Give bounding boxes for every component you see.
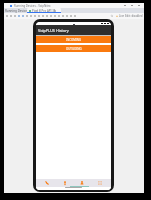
button[interactable]: tool5 [25, 13, 29, 19]
button[interactable]: tool2 [13, 13, 17, 19]
button[interactable]: Minimize [121, 3, 128, 8]
button[interactable]: Keypad [93, 179, 107, 187]
staticText: Live Edit: disabled [119, 14, 143, 18]
button[interactable]: INCOMING [36, 36, 111, 43]
button[interactable]: tool7 [33, 13, 37, 19]
button[interactable]: Live Edit: disabled [116, 14, 143, 18]
button[interactable]: Pixel 8 Pro API 35 [27, 8, 61, 13]
button[interactable]: Contacts [75, 179, 89, 187]
button[interactable]: Close tab [53, 9, 57, 13]
button[interactable]: tool4 [21, 13, 25, 19]
button[interactable]: tool13 [57, 13, 61, 19]
staticText: INCOMING [66, 38, 82, 42]
button[interactable]: OUTGOING [36, 45, 111, 52]
button[interactable]: tool8 [37, 13, 41, 19]
button[interactable]: tool12 [53, 13, 57, 19]
button[interactable]: tool10 [45, 13, 49, 19]
staticText: Running Devices [5, 9, 29, 13]
button[interactable]: Calls [40, 179, 54, 187]
staticText: VoipPLUS History [38, 28, 69, 33]
button[interactable]: Running Devices [5, 9, 29, 13]
button[interactable]: Voicemail [58, 179, 72, 187]
button[interactable]: Maximize [128, 3, 135, 8]
button[interactable]: tool9 [41, 13, 45, 19]
button[interactable]: tool17 [73, 13, 77, 19]
staticText: Pixel 8 Pro API 35 [32, 9, 56, 13]
staticText: OUTGOING [66, 47, 82, 51]
button[interactable]: tool11 [49, 13, 53, 19]
button[interactable]: tool1 [9, 13, 13, 19]
button[interactable]: tool0 [5, 13, 9, 19]
button[interactable]: tool6 [29, 13, 33, 19]
button[interactable]: tool3 [17, 13, 21, 19]
button[interactable]: Close [135, 3, 142, 8]
staticText: Running Devices - VoipNitro [14, 4, 51, 8]
button[interactable]: tool16 [69, 13, 73, 19]
button[interactable]: tool15 [65, 13, 69, 19]
button[interactable]: tool14 [61, 13, 65, 19]
button[interactable]: Search [110, 14, 114, 18]
